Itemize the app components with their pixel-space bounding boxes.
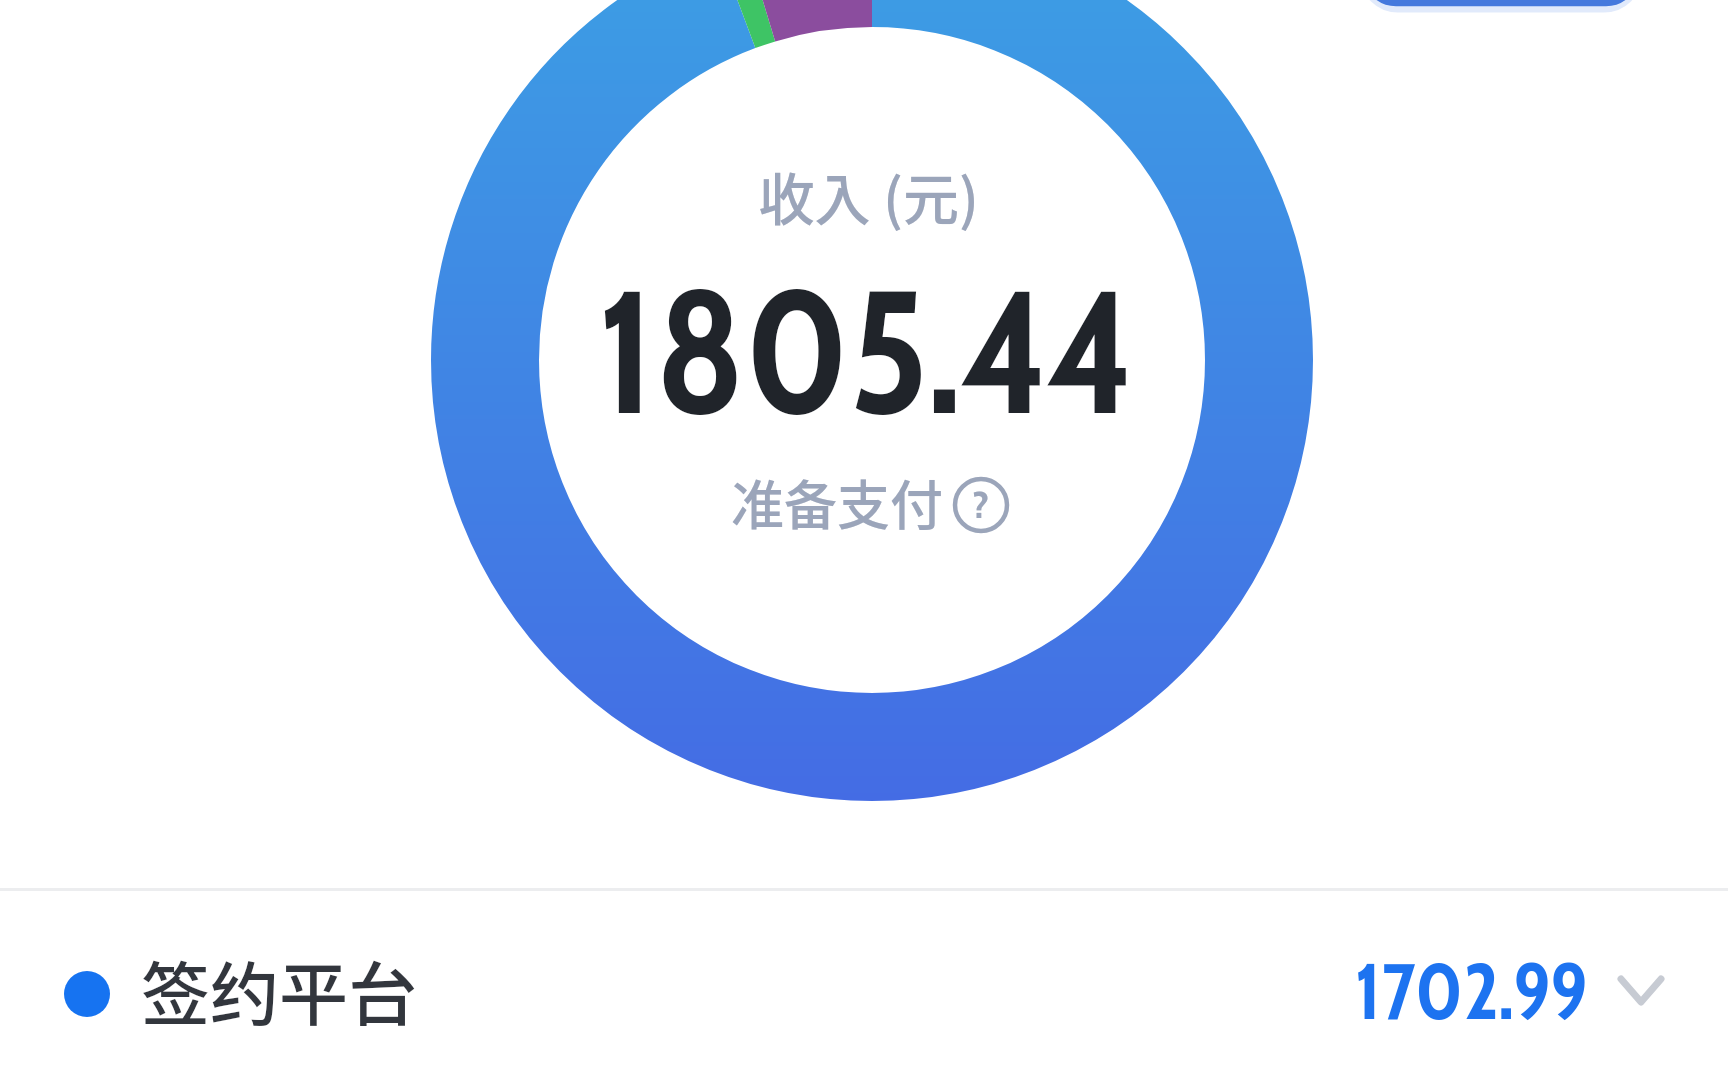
button[interactable] — [1366, 0, 1636, 10]
button[interactable] — [0, 905, 1728, 1080]
